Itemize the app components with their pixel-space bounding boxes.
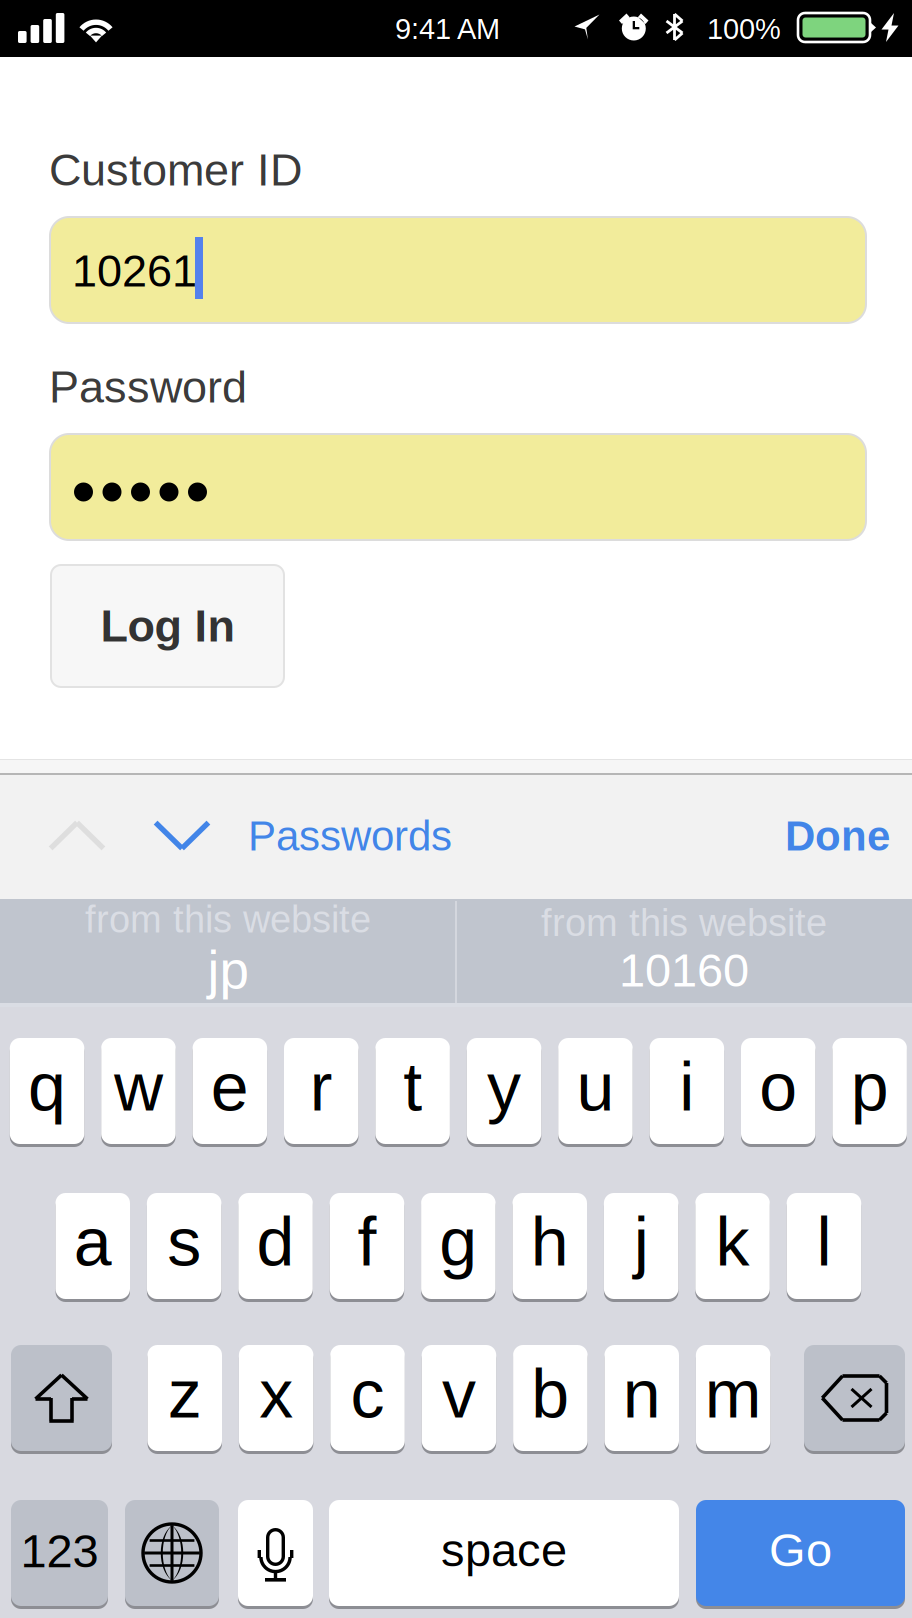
staticText: c	[351, 1356, 385, 1432]
staticText: Customer ID	[49, 145, 302, 195]
button[interactable]: Previous field	[48, 820, 106, 851]
staticText: j	[634, 1204, 649, 1280]
staticText: l	[816, 1204, 831, 1280]
staticText: space	[441, 1524, 567, 1576]
button[interactable]: l	[787, 1193, 861, 1302]
button[interactable]: d	[238, 1193, 313, 1302]
staticText: y	[487, 1049, 521, 1125]
button[interactable]: x	[239, 1345, 313, 1454]
staticText: n	[623, 1356, 661, 1432]
button[interactable]: g	[421, 1193, 496, 1302]
staticText: s	[167, 1204, 201, 1280]
staticText: d	[257, 1204, 295, 1280]
staticText: Done	[785, 812, 890, 859]
staticText: o	[759, 1049, 797, 1125]
button[interactable]: u	[558, 1038, 633, 1147]
staticText: t	[403, 1049, 422, 1125]
staticText: 123	[20, 1525, 98, 1577]
staticText: m	[705, 1356, 762, 1432]
staticText: h	[531, 1204, 569, 1280]
button[interactable]	[11, 1345, 112, 1454]
staticText: a	[74, 1204, 112, 1280]
button[interactable]: 123	[11, 1500, 108, 1609]
button[interactable]: r	[284, 1038, 358, 1147]
staticText: w	[114, 1049, 163, 1125]
button[interactable]: from this website	[4, 899, 452, 999]
staticText: Password	[49, 362, 247, 412]
staticText: f	[357, 1204, 376, 1280]
button[interactable]	[50, 434, 866, 540]
button[interactable]: k	[695, 1193, 770, 1302]
button[interactable]	[125, 1500, 219, 1609]
button[interactable]: z	[147, 1345, 222, 1454]
button[interactable]: o	[741, 1038, 815, 1147]
button[interactable]: v	[422, 1345, 496, 1454]
button[interactable]: Log In	[51, 565, 284, 687]
button[interactable]: 10261	[50, 217, 866, 323]
staticText: 100%	[707, 13, 781, 45]
staticText: r	[310, 1049, 333, 1125]
staticText: v	[442, 1356, 476, 1432]
button[interactable]	[804, 1345, 905, 1454]
staticText: b	[531, 1356, 569, 1432]
staticText: from this website	[85, 898, 371, 941]
button[interactable]: w	[101, 1038, 176, 1147]
staticText: i	[679, 1049, 694, 1125]
staticText: u	[576, 1049, 614, 1125]
staticText: q	[28, 1049, 66, 1125]
staticText: e	[211, 1049, 249, 1125]
button[interactable]: m	[696, 1345, 770, 1454]
button[interactable]: space	[329, 1500, 679, 1609]
button[interactable]: j	[604, 1193, 678, 1302]
staticText: x	[259, 1356, 293, 1432]
staticText: k	[716, 1204, 750, 1280]
button[interactable]: s	[147, 1193, 221, 1302]
button[interactable]	[238, 1500, 313, 1609]
staticText: jp	[207, 941, 248, 1000]
staticText: z	[168, 1356, 202, 1432]
staticText: 9:41 AM	[395, 13, 500, 45]
staticText: Go	[769, 1524, 832, 1576]
button[interactable]: y	[467, 1038, 541, 1147]
button[interactable]: a	[55, 1193, 130, 1302]
staticText: g	[439, 1204, 477, 1280]
button[interactable]: b	[513, 1345, 588, 1454]
staticText: Log In	[100, 601, 234, 651]
button[interactable]: i	[650, 1038, 724, 1147]
button[interactable]: f	[330, 1193, 404, 1302]
button[interactable]: Go	[696, 1500, 905, 1609]
staticText: 10261	[72, 246, 197, 296]
button[interactable]: Done	[700, 812, 890, 860]
button[interactable]: from this website	[460, 899, 908, 999]
staticText: p	[851, 1049, 889, 1125]
staticText: Passwords	[248, 812, 452, 859]
button[interactable]: t	[375, 1038, 450, 1147]
button[interactable]: Passwords	[248, 812, 548, 860]
button[interactable]: Next field	[153, 820, 211, 851]
button[interactable]: h	[512, 1193, 587, 1302]
button[interactable]: q	[10, 1038, 84, 1147]
button[interactable]: p	[832, 1038, 907, 1147]
staticText: 10160	[619, 944, 749, 996]
staticText: from this website	[541, 901, 827, 944]
button[interactable]: c	[330, 1345, 405, 1454]
button[interactable]: n	[604, 1345, 679, 1454]
button[interactable]: e	[193, 1038, 267, 1147]
